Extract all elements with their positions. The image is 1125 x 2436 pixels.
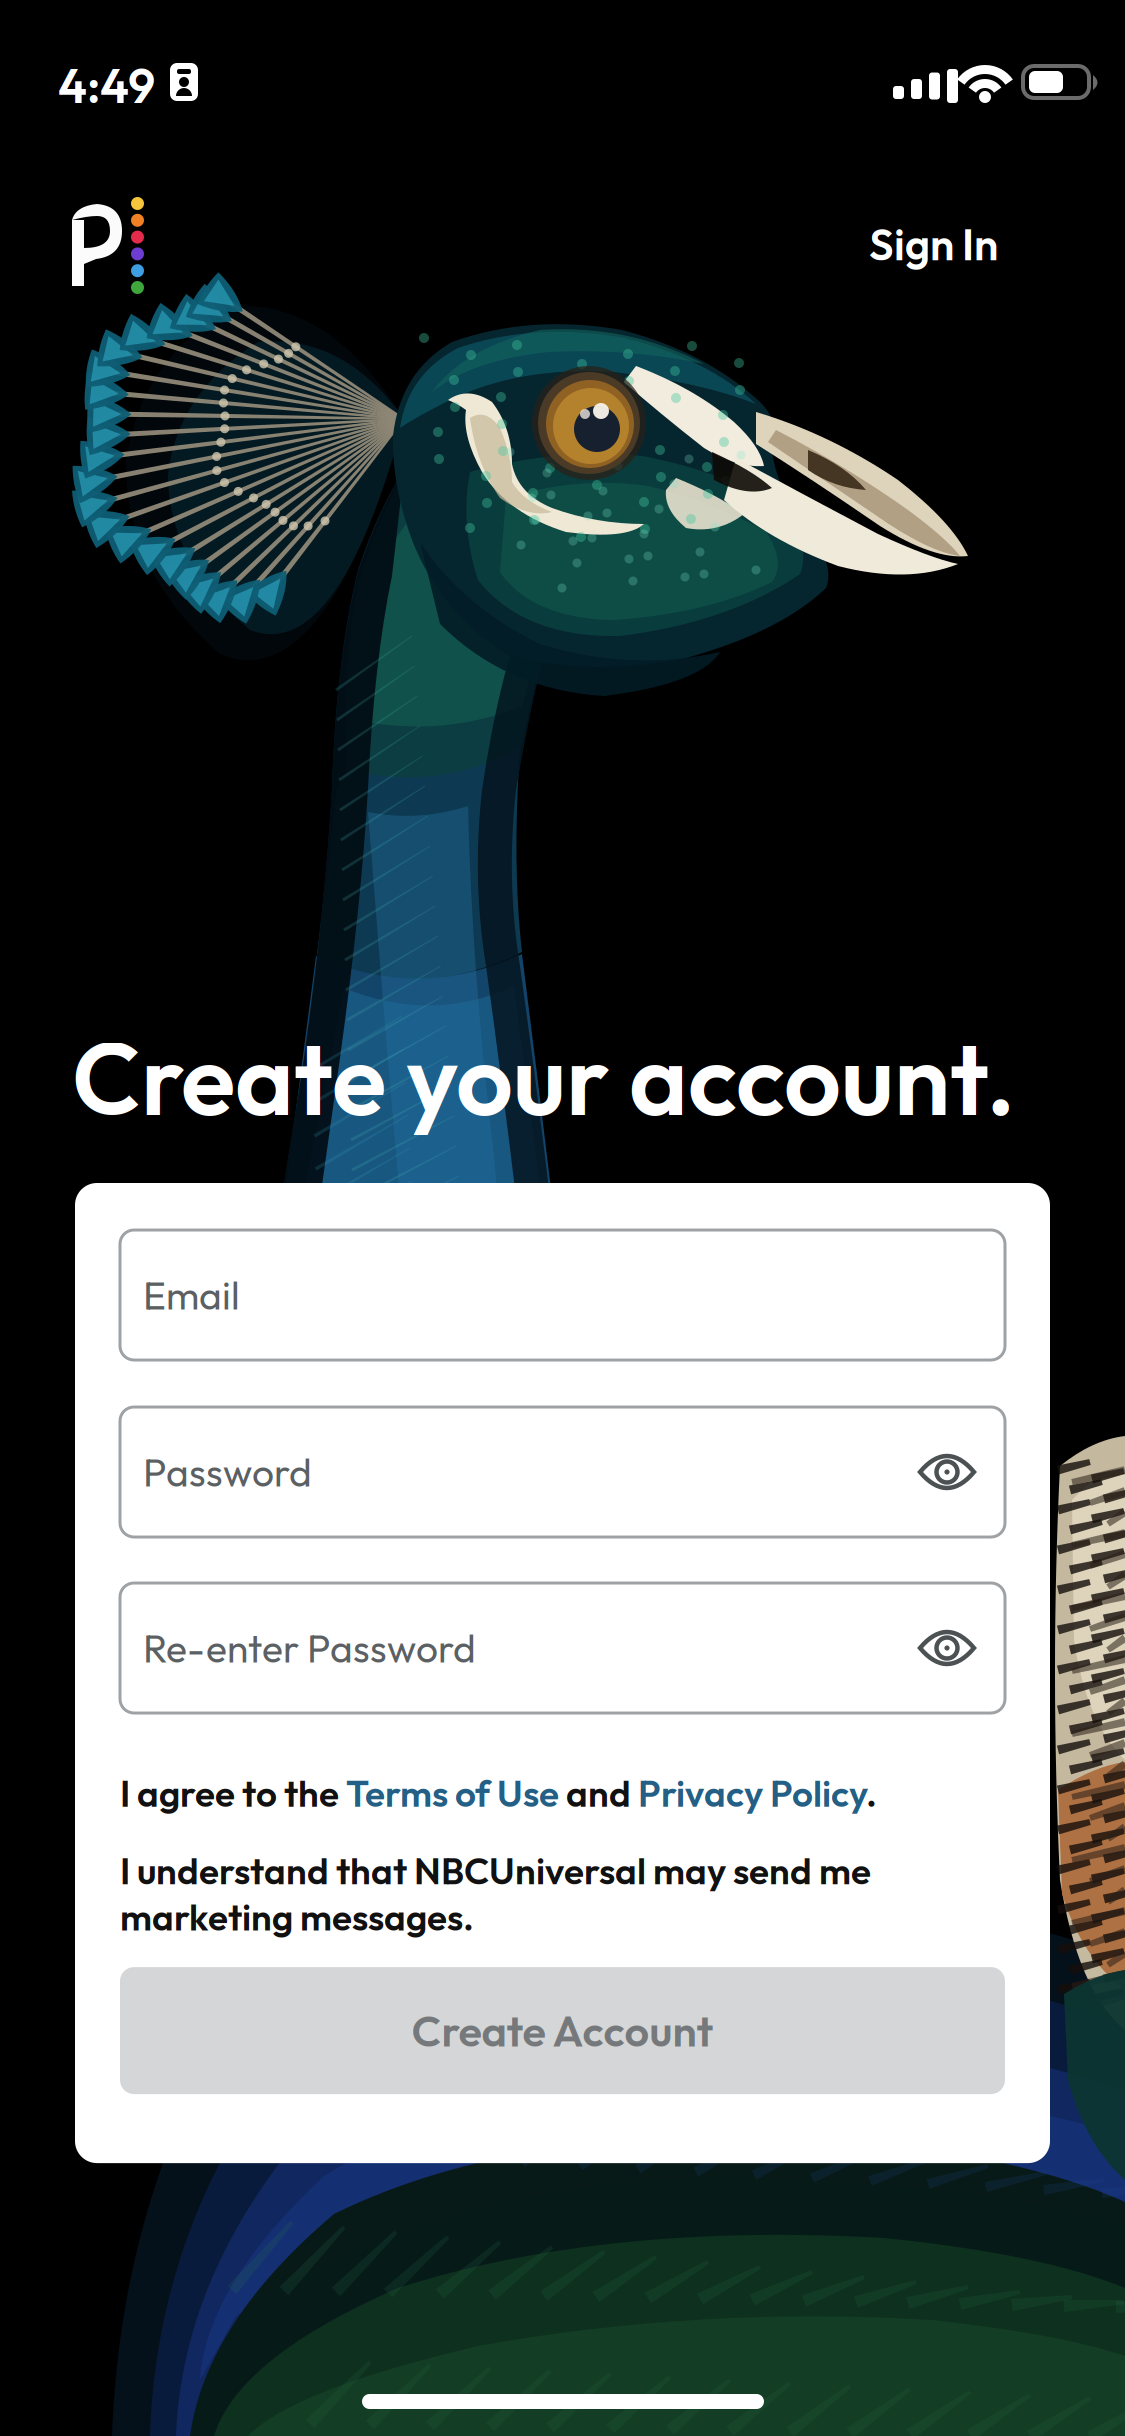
staticText: Password	[143, 1447, 312, 1497]
staticText: I agree to the Terms of Use and Privacy …	[120, 1770, 877, 1816]
button[interactable]: I agree to the Terms of Use and Privacy …	[120, 1770, 1005, 1816]
staticText: Email	[143, 1270, 240, 1320]
button[interactable]: Password	[120, 1407, 1005, 1537]
staticText: Create Account	[411, 2003, 713, 2058]
staticText: Create your account.	[72, 1015, 1016, 1141]
staticText: Sign In	[869, 217, 998, 272]
button[interactable]: Peacock home	[72, 204, 160, 304]
button[interactable]: Create Account	[120, 1967, 1005, 2094]
staticText: Re-enter Password	[143, 1623, 476, 1673]
button[interactable]: Sign In	[849, 199, 1018, 290]
button[interactable]: Re-enter Password	[120, 1583, 1005, 1713]
staticText: 4:49	[58, 55, 155, 115]
staticText: I understand that NBCUniversal may send …	[120, 1847, 871, 1940]
button[interactable]: Email	[120, 1230, 1005, 1360]
